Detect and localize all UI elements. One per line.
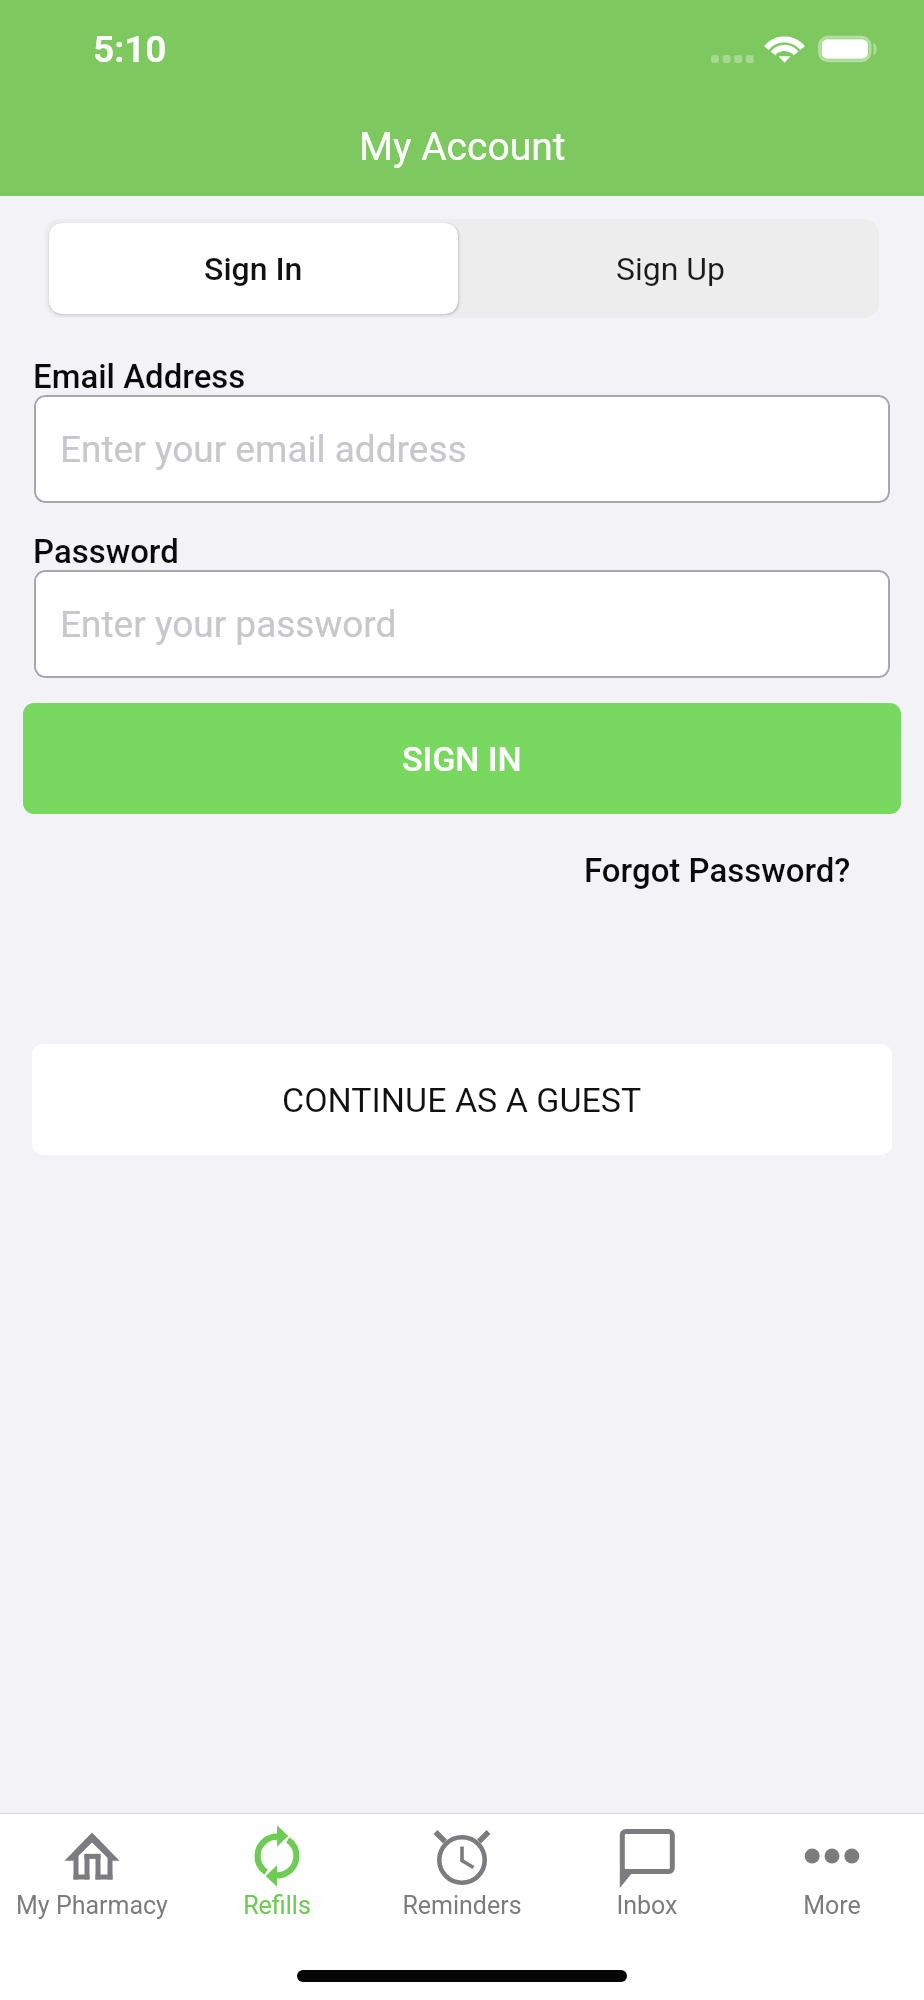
button[interactable]: Inbox [554,1813,739,1928]
staticText: SIGN IN [402,739,522,779]
staticText: CONTINUE AS A GUEST [282,1080,642,1120]
staticText: Email Address [33,357,246,396]
staticText: Reminders [402,1891,522,1920]
staticText: Refills [243,1891,311,1920]
staticText: Enter your password [60,603,397,646]
staticText: 5:10 [93,28,167,71]
staticText: My Account [359,124,566,170]
button[interactable]: Enter your email address [34,395,890,503]
staticText: Password [33,532,179,571]
button[interactable]: SIGN IN [23,703,901,814]
button[interactable]: Refills [184,1813,369,1928]
button[interactable]: More [739,1813,924,1928]
staticText: Enter your email address [60,428,467,471]
button[interactable]: Enter your password [34,570,890,678]
button[interactable]: Sign Up [462,219,879,318]
staticText: More [803,1891,861,1920]
button[interactable]: Sign In [49,223,458,314]
button[interactable]: My Pharmacy [0,1813,184,1928]
button[interactable]: Reminders [369,1813,554,1928]
button[interactable]: CONTINUE AS A GUEST [32,1044,892,1155]
button[interactable]: Forgot Password? [584,851,851,890]
staticText: My Pharmacy [16,1891,168,1920]
staticText: Sign Up [616,250,726,288]
staticText: Inbox [616,1891,678,1920]
staticText: Sign In [204,250,303,288]
